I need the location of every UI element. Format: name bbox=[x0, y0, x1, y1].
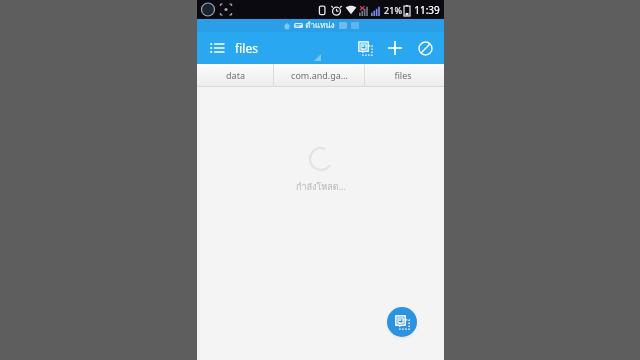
button[interactable]: Add bbox=[380, 32, 410, 64]
button[interactable]: Copy bbox=[350, 32, 380, 64]
button[interactable]: Cancel bbox=[410, 32, 440, 64]
button[interactable]: com.and.ga… bbox=[274, 64, 364, 86]
staticText: 21% bbox=[384, 4, 402, 16]
staticText: 11:39 bbox=[414, 3, 440, 17]
button[interactable]: data bbox=[197, 64, 273, 86]
staticText: files bbox=[235, 40, 258, 56]
staticText: files bbox=[394, 69, 412, 81]
staticText: ตำแหน่ง bbox=[305, 19, 335, 32]
staticText: com.and.ga… bbox=[291, 69, 348, 81]
staticText: data bbox=[226, 69, 245, 81]
button[interactable]: files bbox=[365, 64, 441, 86]
button[interactable]: Menu bbox=[205, 36, 229, 60]
button[interactable]: Paste bbox=[387, 307, 417, 337]
staticText: กำลังโหลด... bbox=[296, 180, 346, 194]
